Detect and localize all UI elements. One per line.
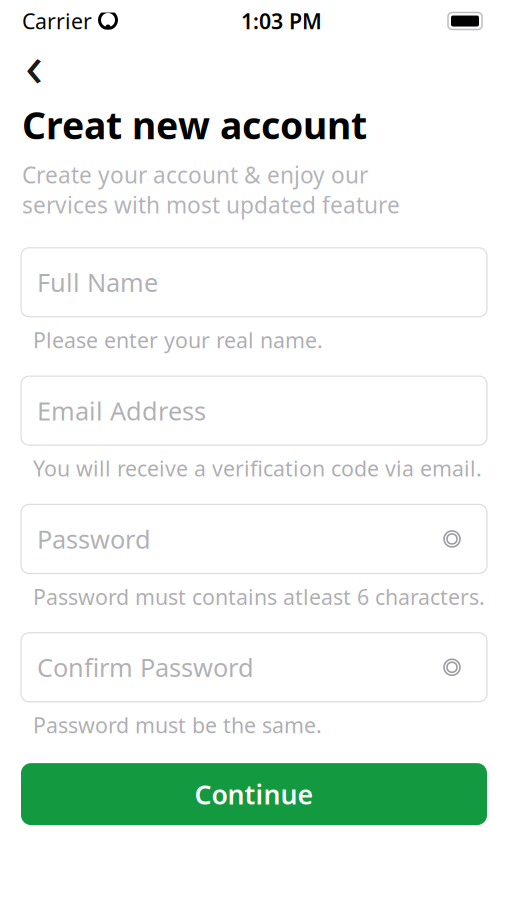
staticText: Full Name <box>37 265 158 299</box>
staticText: Carrier <box>22 7 92 35</box>
staticText: Continue <box>194 776 313 812</box>
staticText: Create your account & enjoy our services… <box>22 160 400 220</box>
button[interactable]: Back <box>12 44 56 84</box>
staticText: Confirm Password <box>37 650 254 684</box>
staticText: ‹ <box>25 25 43 103</box>
button[interactable]: Show password <box>433 646 471 688</box>
button[interactable]: Show password <box>433 518 471 560</box>
staticText: Password <box>37 522 151 556</box>
button[interactable]: Continue <box>21 763 487 825</box>
staticText: Creat new account <box>22 100 367 150</box>
staticText: Password must be the same. <box>33 711 322 739</box>
staticText: Password must contains atleast 6 charact… <box>33 582 485 611</box>
staticText: Please enter your real name. <box>33 326 323 354</box>
staticText: 1:03 PM <box>241 7 322 35</box>
staticText: You will receive a verification code via… <box>33 454 482 482</box>
staticText: Email Address <box>37 394 206 427</box>
